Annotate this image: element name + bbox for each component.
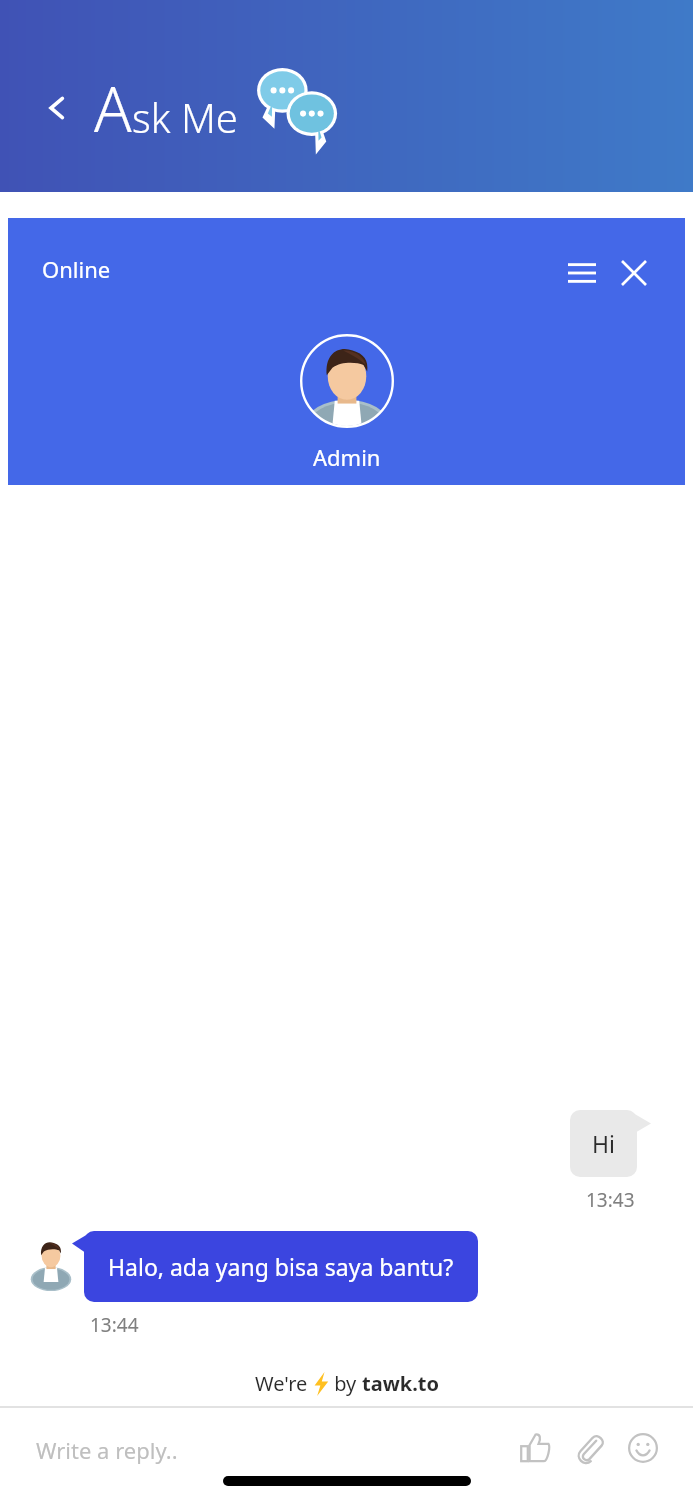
button[interactable]: Hi — [570, 1110, 637, 1177]
staticText: Online — [42, 254, 111, 284]
staticText: Write a reply.. — [36, 1435, 178, 1465]
staticText: 13:43 — [586, 1187, 635, 1213]
staticText: 13:44 — [90, 1312, 139, 1338]
button[interactable]: Halo, ada yang bisa saya bantu? — [84, 1231, 478, 1302]
staticText: Hi — [592, 1128, 615, 1159]
button[interactable]: Menu — [561, 252, 603, 294]
staticText: A — [94, 66, 132, 150]
staticText: Halo, ada yang bisa saya bantu? — [108, 1251, 454, 1282]
staticText: Admin — [313, 442, 381, 472]
button[interactable]: Like — [512, 1425, 558, 1471]
button[interactable]: Write a reply.. — [36, 1435, 178, 1465]
staticText: by — [329, 1370, 362, 1397]
button[interactable]: Emoji — [620, 1425, 666, 1471]
button[interactable]: Close — [613, 252, 655, 294]
button[interactable]: Attach file — [566, 1425, 612, 1471]
staticText: tawk.to — [362, 1370, 439, 1397]
staticText: sk Me — [132, 90, 238, 144]
button[interactable]: Back — [36, 87, 78, 129]
button[interactable]: Online — [42, 254, 111, 284]
staticText: We're — [255, 1370, 313, 1397]
button[interactable]: We're — [0, 1360, 693, 1406]
